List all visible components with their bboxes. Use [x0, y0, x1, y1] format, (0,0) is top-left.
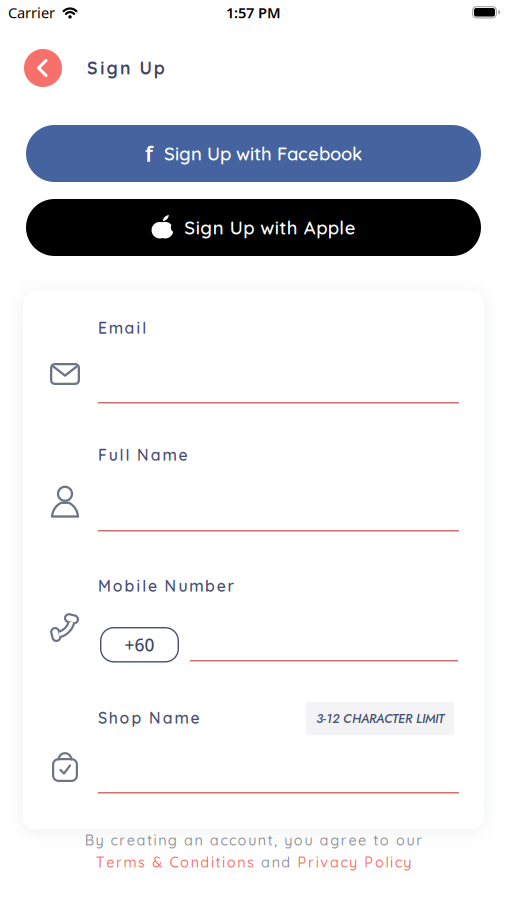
staticText: a — [151, 445, 161, 465]
staticText: o — [294, 831, 303, 849]
button[interactable]: f — [26, 125, 481, 182]
button[interactable]: T — [96, 853, 254, 871]
staticText: p — [243, 216, 254, 239]
staticText: T — [96, 853, 105, 871]
staticText: S — [87, 57, 98, 79]
staticText: d — [200, 853, 209, 871]
staticText: o — [375, 853, 384, 871]
staticText: a — [136, 831, 145, 849]
staticText: i — [154, 831, 157, 849]
staticText: u — [178, 576, 187, 596]
staticText: i — [390, 853, 393, 871]
staticText: s — [247, 853, 254, 871]
staticText: o — [380, 831, 389, 849]
staticText: h — [287, 216, 298, 239]
staticText: U — [230, 216, 243, 239]
staticText: m — [175, 708, 189, 728]
staticText: 3-12 CHARACTER LIMIT — [316, 709, 444, 728]
staticText: m — [189, 576, 203, 596]
staticText: s — [138, 853, 145, 871]
staticText: l — [125, 445, 129, 465]
staticText: a — [320, 831, 329, 849]
staticText: e — [358, 831, 366, 849]
staticText: c — [111, 831, 118, 849]
staticText: r — [341, 831, 347, 849]
staticText: p — [131, 708, 141, 728]
staticText: S — [184, 216, 195, 239]
staticText: i — [275, 216, 279, 239]
staticText: b — [205, 576, 215, 596]
staticText: a — [210, 831, 219, 849]
staticText: l — [142, 576, 146, 596]
staticText: o — [120, 708, 130, 728]
staticText: n — [120, 57, 130, 79]
staticText: r — [119, 831, 125, 849]
staticText: i — [222, 853, 225, 871]
staticText: N — [137, 445, 149, 465]
staticText: e — [348, 831, 356, 849]
staticText: B — [85, 831, 94, 849]
staticText: i — [211, 853, 214, 871]
staticText: i — [136, 318, 140, 338]
staticText: c — [220, 831, 227, 849]
staticText: r — [416, 831, 422, 849]
staticText: n — [158, 831, 166, 849]
staticText: c — [395, 853, 402, 871]
button[interactable]: P — [297, 853, 411, 871]
staticText: g — [330, 831, 339, 849]
staticText: n — [191, 853, 199, 871]
staticText: i — [100, 57, 104, 79]
staticText: g — [168, 831, 177, 849]
staticText: r — [228, 576, 235, 596]
staticText: e — [345, 216, 356, 239]
staticText: u — [109, 445, 118, 465]
staticText: e — [127, 831, 135, 849]
button[interactable]: S — [26, 199, 481, 256]
staticText: d — [281, 853, 290, 871]
staticText: e — [148, 576, 157, 596]
staticText: l — [120, 445, 124, 465]
staticText: n — [272, 853, 280, 871]
staticText: m — [123, 853, 136, 871]
staticText: a — [184, 831, 193, 849]
button[interactable]: +60 — [100, 627, 179, 662]
staticText: M — [98, 576, 111, 596]
staticText: S — [98, 708, 107, 728]
staticText: a — [330, 853, 339, 871]
staticText: t — [373, 831, 378, 849]
staticText: t — [267, 831, 272, 849]
staticText: m — [163, 445, 177, 465]
staticText: A — [304, 216, 316, 239]
staticText: u — [304, 831, 312, 849]
button[interactable]: Back — [24, 49, 62, 87]
staticText: w — [260, 216, 274, 239]
staticText: t — [215, 853, 220, 871]
staticText: & — [152, 853, 162, 871]
staticText: , — [274, 831, 277, 849]
staticText: l — [142, 318, 146, 338]
staticText: +60 — [124, 633, 154, 656]
staticText: i — [136, 576, 140, 596]
staticText: c — [229, 831, 236, 849]
staticText: h — [109, 708, 118, 728]
staticText: a — [125, 318, 135, 338]
staticText: n — [258, 831, 266, 849]
staticText: p — [328, 216, 339, 239]
staticText: a — [163, 708, 173, 728]
staticText: i — [316, 853, 319, 871]
staticText: C — [169, 853, 178, 871]
staticText: E — [98, 318, 107, 338]
